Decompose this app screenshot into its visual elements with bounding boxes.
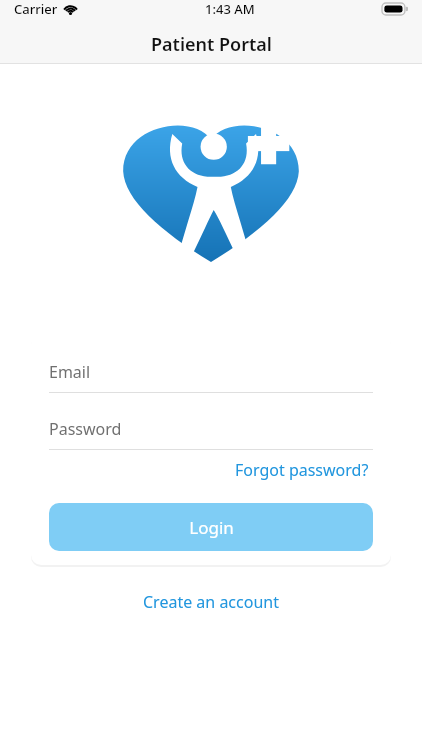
staticText: Create an account — [143, 591, 279, 613]
staticText: 1:43 AM — [205, 0, 255, 18]
button[interactable]: Forgot password? — [231, 456, 373, 484]
button[interactable]: Email — [49, 360, 373, 393]
staticText: Patient Portal — [151, 32, 272, 57]
other: Patient Portal logo — [121, 108, 301, 266]
staticText: Login — [189, 516, 234, 539]
staticText: Password — [49, 418, 122, 440]
button[interactable]: Login — [49, 503, 373, 551]
staticText: Carrier — [14, 0, 58, 18]
staticText: Forgot password? — [235, 459, 369, 481]
button[interactable]: Create an account — [131, 585, 291, 619]
staticText: Email — [49, 361, 91, 383]
button[interactable]: Password — [49, 417, 373, 450]
